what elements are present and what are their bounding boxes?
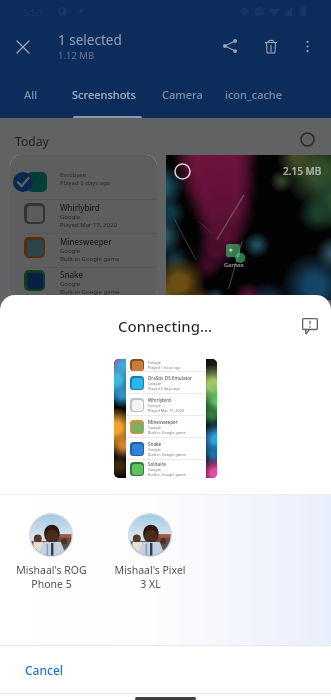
staticText: Escobase [60, 171, 87, 179]
staticText: Google [60, 213, 81, 221]
button[interactable]: Share [212, 28, 248, 64]
button[interactable]: More options [291, 30, 323, 62]
button[interactable]: Mishaal's Pixel [104, 513, 196, 591]
staticText: Snake [60, 269, 84, 280]
staticText: Mishaal's ROG [16, 563, 87, 577]
staticText: DraStic DS Emulator [148, 375, 193, 381]
staticText: Connecting… [118, 316, 213, 336]
staticText: Games [224, 261, 244, 269]
staticText: Built-in Google game [148, 452, 186, 457]
staticText: Camera [162, 87, 203, 102]
staticText: All [24, 87, 38, 102]
button[interactable]: Send feedback [295, 311, 325, 341]
staticText: Minesweeper [60, 236, 112, 247]
staticText: Google [60, 280, 81, 288]
button[interactable]: Close [9, 33, 36, 60]
button[interactable]: All [12, 70, 50, 118]
staticText: Google [148, 425, 161, 430]
staticText: Whirlybird [148, 397, 171, 403]
staticText: Google [148, 447, 161, 452]
staticText: Built-in Google game [148, 472, 186, 477]
staticText: Google [60, 247, 81, 255]
staticText: Phone 5 [31, 577, 72, 591]
staticText: 1 selected [58, 31, 122, 49]
staticText: 5:50 [23, 6, 42, 19]
staticText: Played 1 hour ago [148, 365, 181, 370]
staticText: Snake [148, 441, 162, 447]
button[interactable]: Delete [253, 28, 289, 64]
button[interactable]: icon_cache [213, 70, 295, 118]
staticText: Cancel [25, 662, 64, 678]
staticText: 3 XL [140, 577, 161, 591]
button[interactable]: Cancel [17, 654, 72, 686]
staticText: icon_cache [225, 87, 283, 102]
staticText: Played Mar 17, 2020 [60, 221, 117, 229]
staticText: Played 5 days ago [60, 179, 111, 187]
staticText: 2.15 MB [283, 164, 322, 178]
staticText: 1.12 MB [58, 49, 95, 62]
button[interactable]: Mishaal's ROG [5, 513, 97, 591]
button[interactable]: Camera [150, 70, 215, 118]
staticText: Played 5 days ago [148, 386, 180, 391]
staticText: Google [148, 467, 161, 472]
staticText: Google [148, 403, 161, 408]
staticText: Google [148, 360, 161, 365]
staticText: Built-in Google game [60, 288, 120, 296]
staticText: Whirlybird [60, 202, 100, 213]
staticText: Played Mar 17, 2020 [148, 408, 184, 413]
button[interactable]: Screenshots [60, 70, 148, 118]
staticText: Built-in Google game [60, 255, 120, 263]
staticText: Google [148, 381, 161, 386]
staticText: Today [15, 133, 49, 149]
staticText: Minesweeper [148, 419, 178, 425]
staticText: Mishaal's Pixel [114, 563, 186, 577]
staticText: Built-in Google game [148, 430, 186, 435]
staticText: Screenshots [72, 87, 136, 102]
staticText: Solitaire [148, 461, 166, 467]
